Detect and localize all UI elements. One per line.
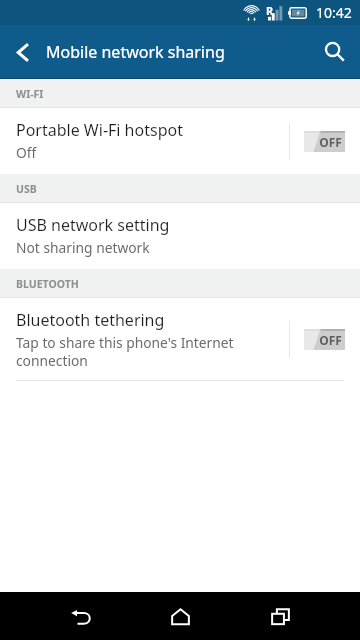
button[interactable]: Bluetooth tethering <box>0 298 360 380</box>
button[interactable]: Back <box>31 592 130 640</box>
button[interactable]: Search <box>310 25 360 79</box>
button[interactable]: Toggle off <box>289 298 360 380</box>
staticText: 10:42 <box>316 3 352 22</box>
staticText: OFF <box>319 134 342 150</box>
staticText: BLUETOOTH <box>16 277 79 291</box>
button[interactable]: Portable Wi-Fi hotspot <box>0 108 360 174</box>
button[interactable]: USB network setting <box>0 203 360 269</box>
button[interactable]: Home <box>130 592 230 640</box>
staticText: Mobile network sharing <box>46 41 310 63</box>
staticText: R <box>266 3 274 18</box>
staticText: WI-FI <box>16 87 44 101</box>
button[interactable]: Toggle off <box>289 108 360 174</box>
staticText: Tap to share this phone's Internet conne… <box>16 333 234 370</box>
staticText: Off <box>16 143 37 162</box>
staticText: USB <box>16 182 37 196</box>
staticText: Bluetooth tethering <box>16 309 165 331</box>
staticText: Not sharing network <box>16 238 150 257</box>
button[interactable]: Recent apps <box>230 592 330 640</box>
button[interactable]: Navigate up <box>0 25 46 79</box>
staticText: Portable Wi-Fi hotspot <box>16 119 183 141</box>
staticText: USB network setting <box>16 214 170 236</box>
staticText: OFF <box>319 332 342 348</box>
